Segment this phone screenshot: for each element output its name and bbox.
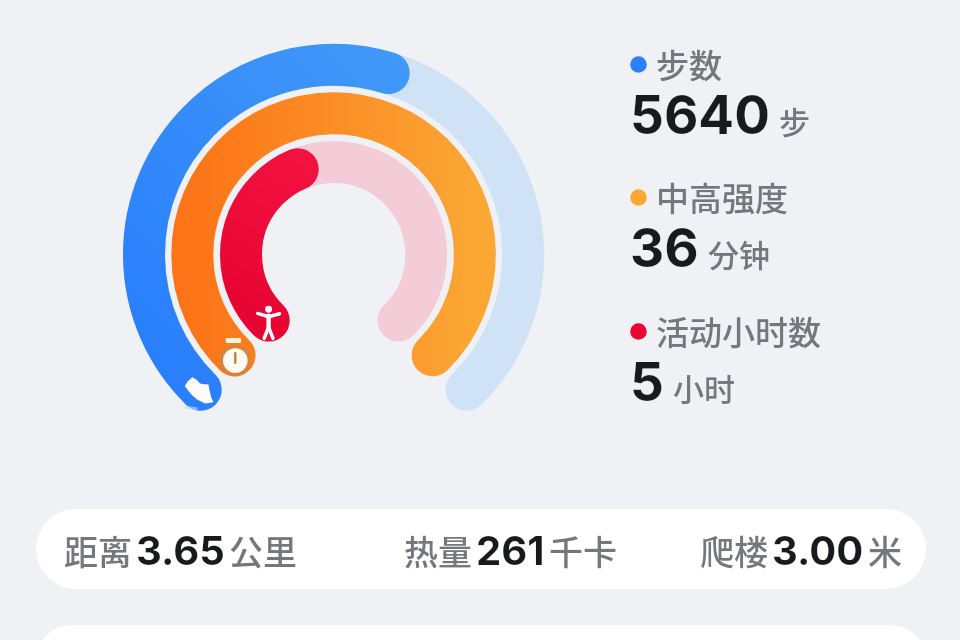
button[interactable]: 活动小时数 xyxy=(630,307,821,419)
button[interactable]: 中高强度 xyxy=(630,173,788,285)
staticText: 爬楼 xyxy=(700,526,768,575)
staticText: 36 xyxy=(630,216,699,280)
button[interactable]: 距离 xyxy=(36,509,926,589)
staticText: 活动小时数 xyxy=(656,307,821,355)
staticText: 5 xyxy=(630,350,664,414)
staticText: 3.00 xyxy=(772,526,864,574)
staticText: 公里 xyxy=(229,526,297,575)
staticText: 步 xyxy=(779,98,810,143)
button[interactable]: 距离 xyxy=(64,526,297,575)
staticText: 5640 xyxy=(630,83,770,147)
staticText: 米 xyxy=(868,526,902,575)
button[interactable]: 步数 xyxy=(630,40,810,152)
staticText: 千卡 xyxy=(549,526,617,575)
button[interactable]: 爬楼 xyxy=(700,526,902,575)
staticText: 中高强度 xyxy=(656,173,788,221)
staticText: 261 xyxy=(476,526,545,574)
button[interactable]: 热量 xyxy=(404,526,617,575)
staticText: 步数 xyxy=(656,40,722,88)
staticText: 距离 xyxy=(64,526,132,575)
staticText: 3.65 xyxy=(136,526,225,574)
button[interactable]: 活动圆环：步数、中高强度、活动小时数 xyxy=(118,36,550,468)
staticText: 分钟 xyxy=(708,231,770,276)
staticText: 小时 xyxy=(673,365,735,410)
staticText: 热量 xyxy=(404,526,472,575)
